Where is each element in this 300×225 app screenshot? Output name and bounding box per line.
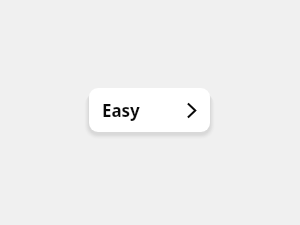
other: Open Easy: [187, 103, 196, 118]
staticText: Easy: [102, 99, 140, 122]
button[interactable]: Easy: [89, 88, 210, 132]
